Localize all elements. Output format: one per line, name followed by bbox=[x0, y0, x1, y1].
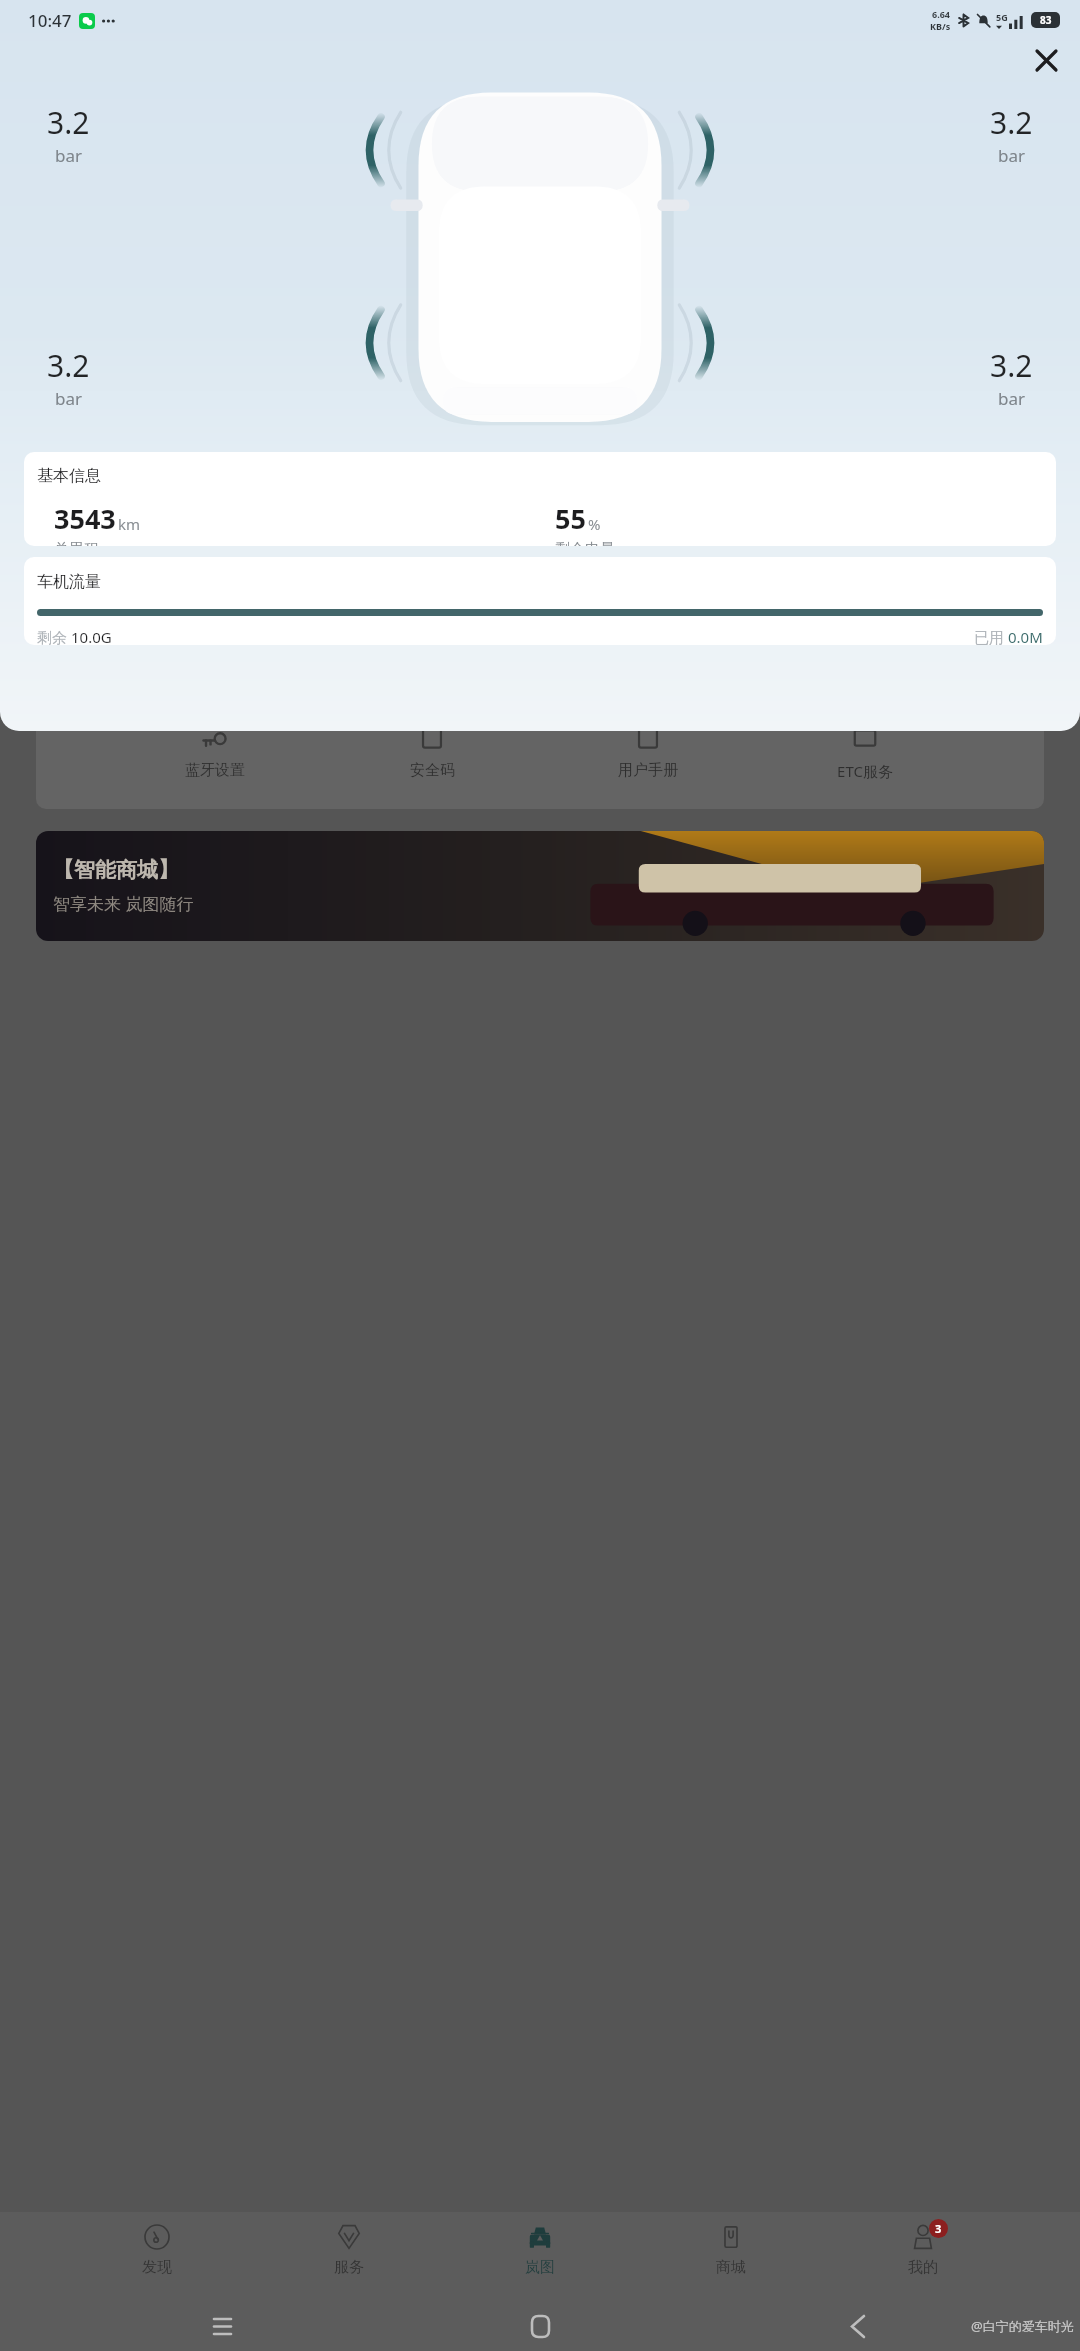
staticText: 我的 bbox=[908, 2258, 938, 2277]
button[interactable]: 发现 bbox=[123, 2222, 191, 2277]
button[interactable]: 商城 bbox=[697, 2222, 765, 2277]
staticText: % bbox=[588, 514, 601, 534]
staticText: 已用 bbox=[974, 627, 1008, 645]
staticText: 发现 bbox=[142, 2258, 172, 2277]
staticText: 6.64 bbox=[932, 8, 950, 20]
staticText: 用户手册 bbox=[618, 761, 678, 780]
staticText: 岚图 bbox=[525, 2258, 555, 2277]
staticText: 3543 bbox=[54, 500, 116, 537]
staticText: 10:47 bbox=[28, 9, 72, 32]
button[interactable]: 基本信息 bbox=[24, 452, 1056, 546]
staticText: KB/s bbox=[930, 20, 951, 32]
button[interactable]: Home bbox=[523, 2309, 557, 2343]
staticText: 3.2 bbox=[47, 345, 90, 386]
button[interactable]: 3 bbox=[889, 2222, 957, 2277]
staticText: 智享未来 岚图随行 bbox=[53, 892, 194, 915]
staticText: 3.2 bbox=[990, 345, 1033, 386]
staticText: 服务 bbox=[334, 2258, 364, 2277]
staticText: 55 bbox=[555, 500, 586, 537]
staticText: 安全码 bbox=[410, 761, 455, 780]
staticText: 车机流量 bbox=[37, 572, 101, 592]
staticText: 3 bbox=[935, 2221, 942, 2236]
button[interactable]: 岚图 bbox=[506, 2222, 574, 2277]
button[interactable]: 服务 bbox=[315, 2222, 383, 2277]
staticText: 蓝牙设置 bbox=[185, 761, 245, 780]
button[interactable]: Back bbox=[841, 2309, 875, 2343]
button[interactable]: Recents bbox=[205, 2309, 239, 2343]
staticText: 83 bbox=[1040, 13, 1052, 27]
button[interactable]: 用户手册 bbox=[611, 722, 685, 780]
button[interactable]: 车机流量 bbox=[24, 557, 1056, 645]
staticText: ETC服务 bbox=[837, 761, 893, 781]
staticText: 5G bbox=[996, 11, 1008, 23]
button[interactable]: 安全码 bbox=[395, 722, 469, 780]
staticText: 商城 bbox=[716, 2258, 746, 2277]
staticText: bar bbox=[55, 387, 83, 410]
staticText: 剩余电量 bbox=[555, 540, 615, 546]
staticText: bar bbox=[998, 144, 1026, 167]
staticText: km bbox=[118, 514, 141, 534]
staticText: 【智能商城】 bbox=[53, 857, 179, 883]
staticText: 3.2 bbox=[47, 102, 90, 143]
staticText: @白宁的爱车时光 bbox=[971, 2317, 1074, 2335]
staticText: bar bbox=[998, 387, 1026, 410]
button[interactable]: Close bbox=[1026, 40, 1066, 80]
staticText: bar bbox=[55, 144, 83, 167]
staticText: 总里程 bbox=[54, 540, 99, 546]
staticText: 基本信息 bbox=[37, 466, 101, 486]
staticText: 0.0M bbox=[1008, 627, 1043, 645]
button[interactable]: ETC服务 bbox=[828, 722, 902, 781]
staticText: 3.2 bbox=[990, 102, 1033, 143]
button[interactable]: 【智能商城】 bbox=[36, 831, 1044, 941]
button[interactable]: 蓝牙设置 bbox=[178, 722, 252, 780]
staticText: 10.0G bbox=[71, 627, 112, 645]
staticText: 剩余 bbox=[37, 627, 71, 645]
